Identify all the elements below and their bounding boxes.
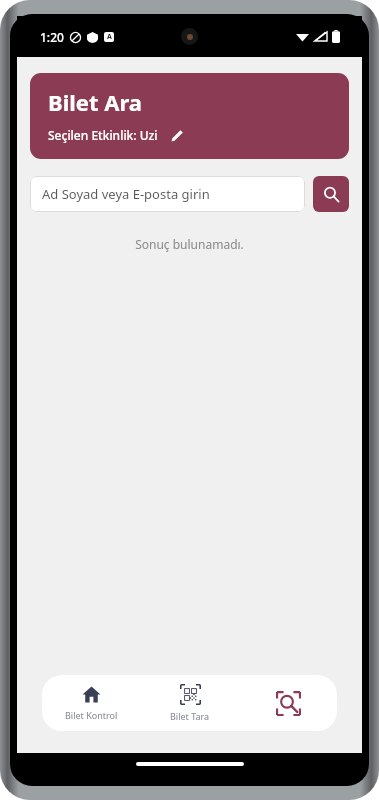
- button[interactable]: Bilet Ara: [239, 675, 337, 731]
- staticText: Bilet Ara: [48, 87, 142, 117]
- button[interactable]: Ad Soyad veya E-posta girin: [30, 176, 305, 212]
- button[interactable]: Etkinlik düzenle: [168, 126, 186, 144]
- staticText: Ad Soyad veya E-posta girin: [42, 185, 210, 203]
- staticText: Bilet Kontrol: [65, 709, 118, 721]
- button[interactable]: Bilet Ara: [30, 73, 349, 159]
- button[interactable]: Bilet Tara: [141, 675, 239, 731]
- staticText: 1:20: [40, 29, 64, 45]
- button[interactable]: Bilet Kontrol: [42, 675, 141, 731]
- staticText: Bilet Tara: [170, 710, 210, 722]
- staticText: A: [107, 32, 112, 42]
- staticText: Sonuç bulunamadı.: [17, 236, 362, 252]
- staticText: Seçilen Etkinlik: Uzi: [48, 127, 158, 143]
- button[interactable]: Ara: [313, 176, 349, 212]
